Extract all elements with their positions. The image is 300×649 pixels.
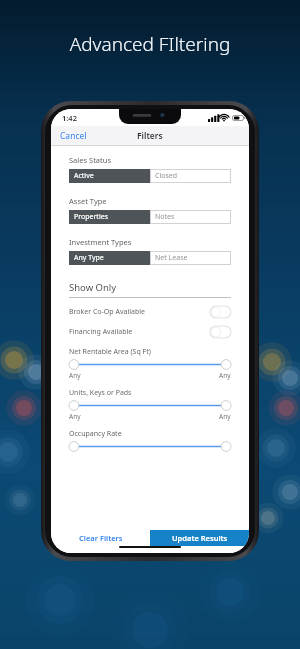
staticText: Clear Filters xyxy=(79,533,123,543)
button[interactable]: Units, Keys or Pads range slider xyxy=(69,400,231,411)
staticText: Cancel xyxy=(60,130,87,142)
button[interactable]: Broker Co-Op Available xyxy=(69,305,231,318)
staticText: Properties xyxy=(74,212,108,222)
staticText: Notes xyxy=(155,212,175,222)
staticText: Any xyxy=(69,412,81,421)
staticText: Units, Keys or Pads xyxy=(69,388,132,398)
other: Broker Co-Op Available xyxy=(210,306,231,318)
staticText: Filters xyxy=(137,130,163,142)
staticText: Financing Available xyxy=(69,327,210,337)
other: Financing Available xyxy=(210,326,231,338)
button[interactable]: Occupancy Rate range slider xyxy=(69,441,231,452)
staticText: Sales Status xyxy=(69,155,111,165)
staticText: Any Type xyxy=(74,253,104,263)
button[interactable]: Financing Available xyxy=(69,325,231,338)
staticText: Any xyxy=(219,412,231,421)
button[interactable]: Net Lease xyxy=(150,251,231,265)
staticText: 1:42 xyxy=(62,113,77,123)
staticText: Any xyxy=(69,371,81,380)
button[interactable]: Any Type xyxy=(69,251,150,265)
staticText: Advanced FIltering xyxy=(0,31,300,57)
staticText: Investment Types xyxy=(69,237,132,247)
staticText: Occupancy Rate xyxy=(69,429,122,439)
staticText: Broker Co-Op Available xyxy=(69,307,210,317)
staticText: Active xyxy=(74,171,94,181)
button[interactable]: Properties xyxy=(69,210,150,224)
button[interactable]: Notes xyxy=(150,210,231,224)
button[interactable]: Clear Filters xyxy=(51,530,150,546)
staticText: Any xyxy=(219,371,231,380)
staticText: Update Results xyxy=(172,533,228,543)
button[interactable]: Closed xyxy=(150,169,231,183)
staticText: Net Lease xyxy=(155,253,188,263)
button[interactable]: Active xyxy=(69,169,150,183)
button[interactable]: Update Results xyxy=(150,530,249,546)
staticText: Asset Type xyxy=(69,196,107,206)
button[interactable]: Net Rentable Area (Sq Ft) range slider xyxy=(69,359,231,370)
button[interactable]: Cancel xyxy=(51,127,96,145)
staticText: Net Rentable Area (Sq Ft) xyxy=(69,347,151,357)
staticText: Show Only xyxy=(69,281,117,294)
staticText: Closed xyxy=(155,171,178,181)
